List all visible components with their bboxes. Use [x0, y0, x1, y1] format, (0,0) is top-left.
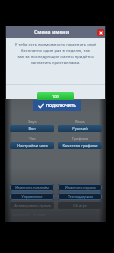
staticText: Чат [29, 136, 36, 141]
staticText: Вкл [28, 126, 36, 131]
staticText: Смена имени [34, 29, 70, 36]
button[interactable]: Изменить никнейм [10, 184, 54, 191]
button[interactable]: Активировать промо [10, 202, 54, 209]
staticText: Об игре [73, 203, 87, 208]
button[interactable]: Качество графики [58, 142, 102, 149]
staticText: Управление [21, 194, 43, 199]
button[interactable]: Изменить пароль [58, 184, 102, 191]
staticText: Сервер #1 · Онлайн [12, 212, 47, 217]
staticText: Язык [75, 119, 85, 124]
button[interactable]: Закрыть [97, 29, 104, 36]
button[interactable]: Вкл [10, 125, 54, 132]
button[interactable]: Управление [10, 193, 54, 200]
staticText: Техподдержка [68, 194, 93, 199]
staticText: Настройки чата [17, 143, 48, 148]
staticText: Активировать промо [14, 203, 51, 208]
staticText: Изменить пароль [65, 185, 96, 190]
staticText: Звук [28, 119, 37, 124]
staticText: Изменить никнейм [15, 185, 49, 190]
staticText: Качество графики [62, 143, 98, 148]
staticText: 100 [52, 94, 59, 99]
button[interactable]: Техподдержка [58, 193, 102, 200]
button[interactable]: Настройки чата [10, 142, 54, 149]
button[interactable]: 100 [37, 92, 74, 100]
button[interactable]: ПОДКЛЮЧИТЬ [33, 100, 81, 111]
staticText: ПОДКЛЮЧИТЬ [46, 103, 76, 108]
button[interactable]: Об игре [58, 202, 102, 209]
staticText: У тебя есть возможность поменять своё бе… [6, 42, 105, 66]
staticText: Графика [72, 136, 89, 141]
button[interactable]: Русский [58, 125, 102, 132]
staticText: Русский [72, 126, 88, 131]
